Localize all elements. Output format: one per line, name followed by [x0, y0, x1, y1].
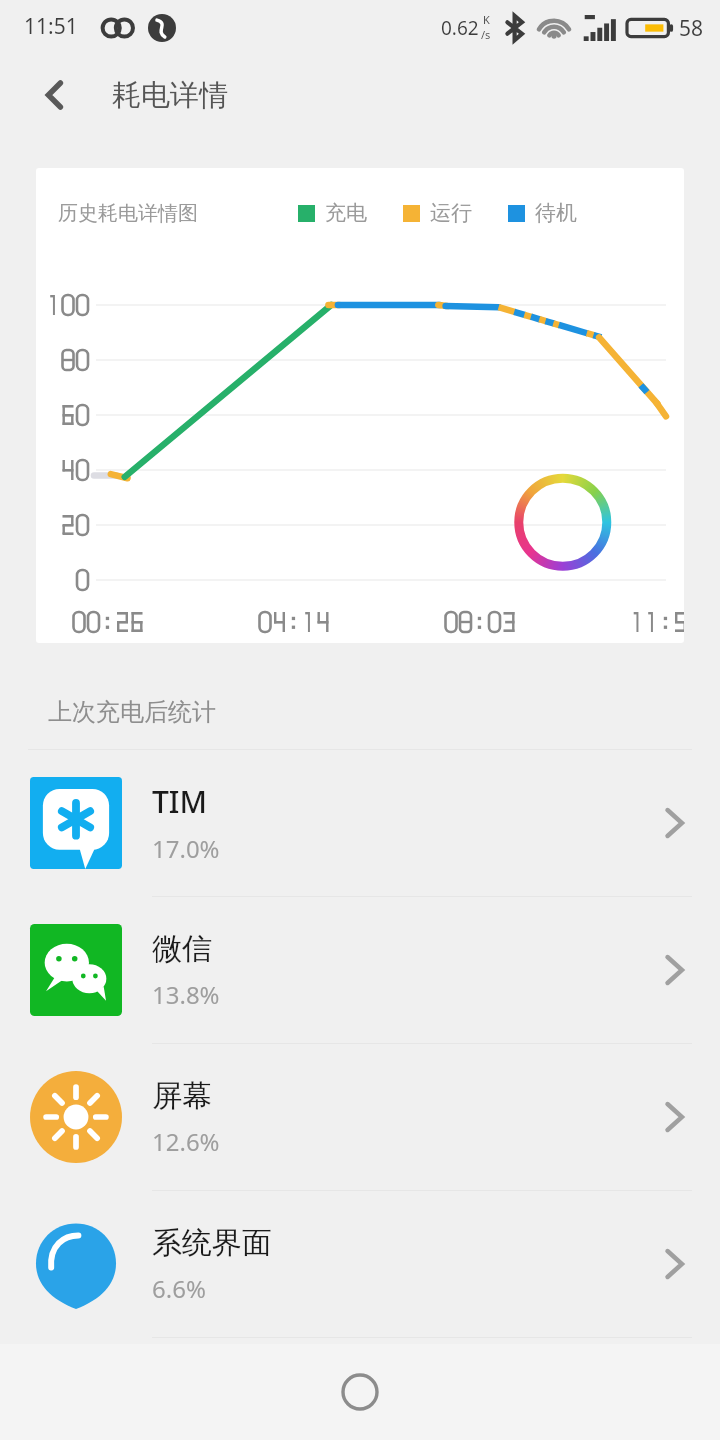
- staticText: 耗电详情: [112, 77, 228, 114]
- staticText: 充电: [325, 200, 367, 226]
- staticText: 11:51: [24, 12, 78, 41]
- staticText: 0.62: [441, 15, 479, 41]
- staticText: /s: [481, 27, 491, 42]
- button[interactable]: 系统界面: [0, 1191, 720, 1337]
- button[interactable]: Home: [325, 1357, 395, 1427]
- staticText: 历史耗电详情图: [58, 201, 198, 226]
- staticText: 系统界面: [152, 1224, 272, 1262]
- staticText: 12.6%: [152, 1125, 220, 1158]
- staticText: K: [483, 12, 490, 27]
- staticText: 6.6%: [152, 1272, 206, 1305]
- staticText: 上次充电后统计: [48, 697, 216, 727]
- staticText: 运行: [430, 200, 472, 226]
- button[interactable]: 微信: [0, 897, 720, 1043]
- button[interactable]: 屏幕: [0, 1044, 720, 1190]
- staticText: 13.8%: [152, 978, 220, 1011]
- staticText: 待机: [535, 200, 577, 226]
- staticText: 屏幕: [152, 1077, 212, 1115]
- button[interactable]: Back: [24, 64, 86, 126]
- staticText: 58: [679, 14, 704, 43]
- staticText: 微信: [152, 930, 212, 968]
- staticText: TIM: [152, 781, 208, 822]
- staticText: 17.0%: [152, 832, 220, 865]
- button[interactable]: TIM: [0, 750, 720, 896]
